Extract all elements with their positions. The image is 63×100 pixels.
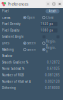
staticText: Gradient Angle — [2, 35, 24, 38]
staticText: Screen — [27, 48, 36, 51]
staticText: Region — [46, 46, 56, 53]
button[interactable]: Screen — [23, 48, 38, 51]
staticText: 1920 px — [40, 22, 52, 26]
staticText: Lines — [2, 41, 9, 45]
staticText: 0.12872 — [47, 61, 60, 64]
button[interactable]: Screen — [23, 41, 38, 45]
staticText: Open — [27, 16, 35, 19]
staticText: Dithering — [2, 86, 16, 90]
staticText: Screen — [27, 41, 36, 45]
staticText: Pixel Opacity — [2, 29, 19, 32]
button[interactable]: Region — [42, 40, 57, 47]
staticText: 0.018000 — [45, 86, 60, 90]
button[interactable]: Maximize — [52, 2, 56, 6]
staticText: Pixel — [2, 9, 9, 13]
staticText: Number of RGB w/ A — [2, 80, 31, 83]
button[interactable]: Open — [23, 16, 38, 19]
staticText: 1080 px — [40, 29, 52, 32]
staticText: 0.081285 — [45, 73, 60, 77]
button[interactable]: Attach — [45, 9, 59, 13]
button[interactable]: Toggle — [56, 35, 59, 38]
staticText: Noise Subtract % — [2, 67, 24, 70]
button[interactable]: Close — [42, 16, 57, 19]
staticText: Shadow — [2, 54, 12, 58]
button[interactable]: Minimize — [46, 2, 50, 6]
button[interactable]: Region — [42, 46, 57, 53]
button[interactable]: Toggle — [42, 35, 45, 38]
staticText: Smooth Gradient % — [2, 61, 28, 64]
staticText: Attach — [48, 9, 56, 13]
staticText: Marching — [2, 48, 14, 51]
staticText: Preferences — [7, 1, 28, 7]
staticText: 0.61025 — [47, 67, 60, 70]
staticText: Number of RGB — [2, 73, 24, 77]
staticText: Close — [46, 16, 54, 19]
button[interactable]: Close — [57, 2, 62, 6]
staticText: Pixel Density — [2, 22, 20, 26]
staticText: 0.002120 — [45, 80, 60, 83]
staticText: Region — [46, 40, 56, 47]
staticText: Canvas — [2, 16, 10, 19]
